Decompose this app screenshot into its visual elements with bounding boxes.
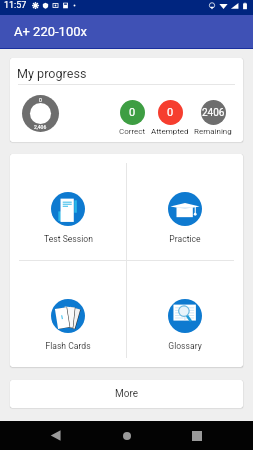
button[interactable]: 0 <box>151 100 189 136</box>
staticText: 0 <box>129 106 136 119</box>
staticText: 11:57 <box>4 0 27 11</box>
staticText: Practice <box>169 234 201 244</box>
staticText: Flash Cards <box>45 341 91 351</box>
staticText: Test Session <box>44 234 93 244</box>
staticText: More <box>115 388 139 400</box>
button[interactable]: Flash Cards <box>10 260 126 367</box>
staticText: My progress <box>17 66 87 81</box>
staticText: A+ 220-100x <box>14 24 87 39</box>
button[interactable]: 2406 <box>194 100 232 136</box>
button[interactable]: More <box>10 380 243 408</box>
button[interactable]: Back <box>38 421 73 450</box>
staticText: 0 <box>167 106 174 119</box>
button[interactable]: Practice <box>126 154 243 260</box>
staticText: Remaining <box>194 127 232 136</box>
button[interactable]: 0 <box>119 100 146 136</box>
button[interactable]: Glossary <box>126 260 243 367</box>
staticText: Attempted <box>151 127 189 136</box>
staticText: 2,406 <box>34 124 47 130</box>
staticText: Correct <box>119 127 146 136</box>
staticText: 2406 <box>202 107 225 119</box>
button[interactable]: Recent apps <box>179 421 214 450</box>
button[interactable]: Test Session <box>10 154 126 260</box>
staticText: 0 <box>39 97 42 103</box>
button[interactable]: A+ 220-100x <box>0 15 253 48</box>
staticText: Glossary <box>168 341 202 351</box>
button[interactable]: Home <box>109 421 144 450</box>
